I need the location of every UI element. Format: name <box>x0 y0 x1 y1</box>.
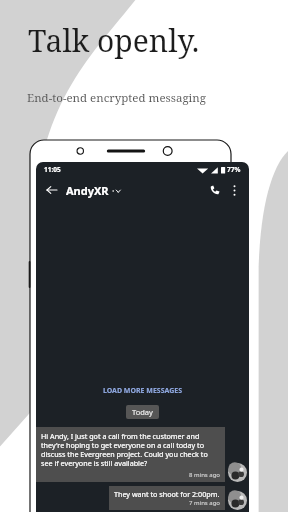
button[interactable]: Back <box>42 180 62 200</box>
staticText: Hi Andy, I just got a call from the cust… <box>41 431 220 468</box>
button[interactable]: LOAD MORE MESSAGES <box>36 383 249 399</box>
staticText: 77% <box>227 165 241 174</box>
button[interactable]: More options <box>225 181 243 199</box>
button[interactable]: AndyXR <box>66 183 121 198</box>
staticText: 11:05 <box>44 165 61 174</box>
staticText: Talk openly. <box>28 20 200 61</box>
staticText: End-to-end encrypted messaging <box>27 90 206 106</box>
button[interactable]: Call <box>205 180 225 200</box>
staticText: AndyXR <box>66 183 109 198</box>
staticText: Today <box>132 407 153 417</box>
staticText: 7 mins ago <box>189 499 220 507</box>
staticText: They want to shoot for 2:00pm. <box>114 489 220 499</box>
staticText: 8 mins ago <box>189 471 220 479</box>
